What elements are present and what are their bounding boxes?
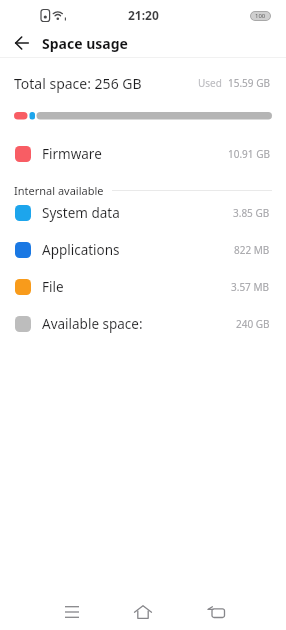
staticText: 100 (255, 12, 266, 20)
staticText: 15.59 GB (228, 76, 270, 90)
button[interactable]: System data (0, 194, 286, 231)
button[interactable]: Firmware (0, 136, 286, 172)
button[interactable]: File (0, 268, 286, 305)
staticText: 21:20 (128, 7, 159, 23)
button[interactable] (123, 595, 163, 629)
staticText: File (42, 278, 64, 296)
staticText: 10.91 GB (228, 147, 270, 161)
staticText: Internal available (14, 183, 104, 198)
button[interactable]: Available space: (0, 305, 286, 342)
button[interactable]: Applications (0, 231, 286, 268)
button[interactable] (195, 595, 235, 629)
staticText: Space usage (42, 34, 128, 53)
staticText: Used (198, 76, 228, 90)
staticText: 822 MB (234, 243, 270, 257)
staticText: Total space: 256 GB (14, 74, 142, 93)
staticText: 3.57 MB (231, 280, 270, 294)
staticText: Applications (42, 241, 120, 259)
staticText: Firmware (42, 145, 102, 163)
button[interactable] (52, 595, 92, 629)
staticText: Available space: (42, 315, 143, 333)
staticText: 3.85 GB (233, 206, 270, 220)
staticText: 240 GB (236, 317, 270, 331)
button[interactable] (0, 29, 44, 57)
staticText: System data (42, 204, 120, 222)
